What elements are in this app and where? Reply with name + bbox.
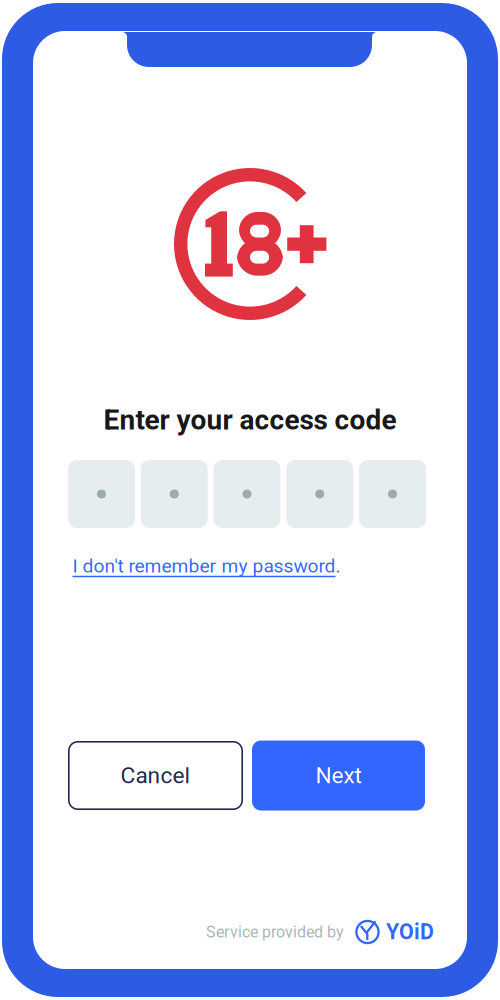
button[interactable]: Cancel [68, 741, 243, 810]
staticText: Next [315, 762, 361, 789]
staticText: . [335, 555, 340, 577]
staticText: YOiD [386, 919, 434, 944]
staticText: I don't remember my password [72, 555, 335, 577]
button[interactable]: Next [252, 740, 425, 810]
staticText: Service provided by [206, 923, 344, 941]
staticText: Enter your access code [103, 404, 396, 436]
staticText: Cancel [120, 762, 190, 789]
button[interactable]: I don't remember my password [72, 551, 362, 581]
